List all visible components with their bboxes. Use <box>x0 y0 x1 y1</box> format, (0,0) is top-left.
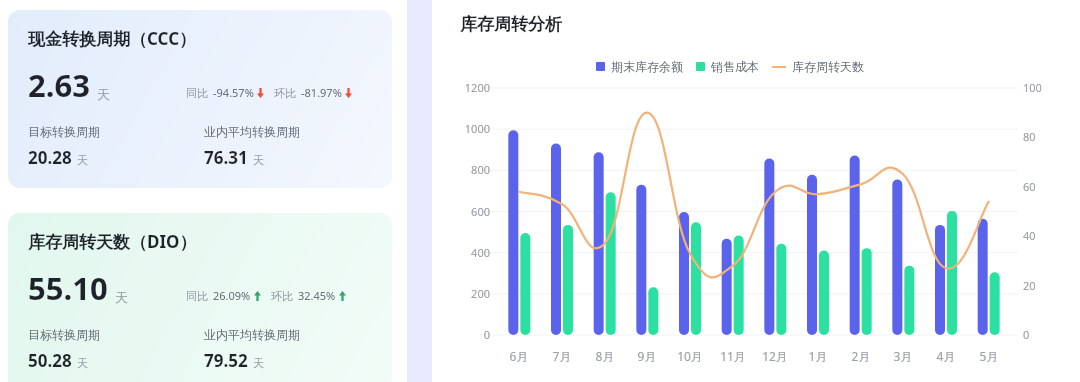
staticText: 同比 <box>186 289 208 303</box>
staticText: 3月 <box>881 348 925 364</box>
staticText: 目标转换周期 <box>28 327 100 342</box>
staticText: 40 <box>1023 228 1036 243</box>
staticText: 11月 <box>711 348 755 364</box>
staticText: 50.28 <box>28 349 72 372</box>
staticText: 1200 <box>440 80 490 95</box>
staticText: 8月 <box>583 348 627 364</box>
staticText: 0 <box>1023 327 1030 342</box>
staticText: 2.63 <box>28 64 90 106</box>
staticText: 7月 <box>540 348 584 364</box>
staticText: 销售成本 <box>711 59 759 74</box>
staticText: 55.10 <box>28 267 108 309</box>
staticText: 天 <box>253 153 264 167</box>
staticText: 同比 <box>186 86 208 100</box>
staticText: 80 <box>1023 129 1036 144</box>
staticText: 400 <box>440 245 490 260</box>
staticText: 环比 <box>274 86 296 100</box>
staticText: 4月 <box>924 348 968 364</box>
staticText: -81.97% <box>301 85 342 100</box>
staticText: 20 <box>1023 278 1036 293</box>
staticText: 20.28 <box>28 146 72 169</box>
staticText: 79.52 <box>204 349 248 372</box>
staticText: 600 <box>440 204 490 219</box>
staticText: 5月 <box>967 348 1011 364</box>
staticText: 天 <box>97 86 110 102</box>
staticText: 目标转换周期 <box>28 124 100 139</box>
staticText: 26.09% <box>213 288 251 303</box>
staticText: 2月 <box>839 348 883 364</box>
staticText: 环比 <box>271 289 293 303</box>
staticText: 天 <box>77 153 88 167</box>
staticText: 12月 <box>753 348 797 364</box>
staticText: 天 <box>77 356 88 370</box>
staticText: 0 <box>440 327 490 342</box>
staticText: 32.45% <box>298 288 336 303</box>
staticText: 天 <box>115 289 128 305</box>
staticText: 76.31 <box>204 146 248 169</box>
staticText: 库存周转分析 <box>460 14 562 35</box>
staticText: 库存周转天数 <box>792 59 864 74</box>
button[interactable]: 库存周转天数（DIO） <box>8 213 392 382</box>
staticText: 6月 <box>497 348 541 364</box>
staticText: 9月 <box>625 348 669 364</box>
staticText: 800 <box>440 162 490 177</box>
staticText: 200 <box>440 286 490 301</box>
staticText: 100 <box>1023 80 1042 95</box>
staticText: 60 <box>1023 179 1036 194</box>
staticText: 库存周转天数（DIO） <box>28 230 197 253</box>
staticText: 天 <box>253 356 264 370</box>
staticText: 业内平均转换周期 <box>204 124 300 139</box>
staticText: 现金转换周期（CCC） <box>28 27 197 50</box>
button[interactable]: 现金转换周期（CCC） <box>8 10 392 188</box>
staticText: -94.57% <box>213 85 254 100</box>
staticText: 业内平均转换周期 <box>204 327 300 342</box>
staticText: 期末库存余额 <box>611 59 683 74</box>
staticText: 1000 <box>440 121 490 136</box>
staticText: 10月 <box>668 348 712 364</box>
staticText: 1月 <box>796 348 840 364</box>
